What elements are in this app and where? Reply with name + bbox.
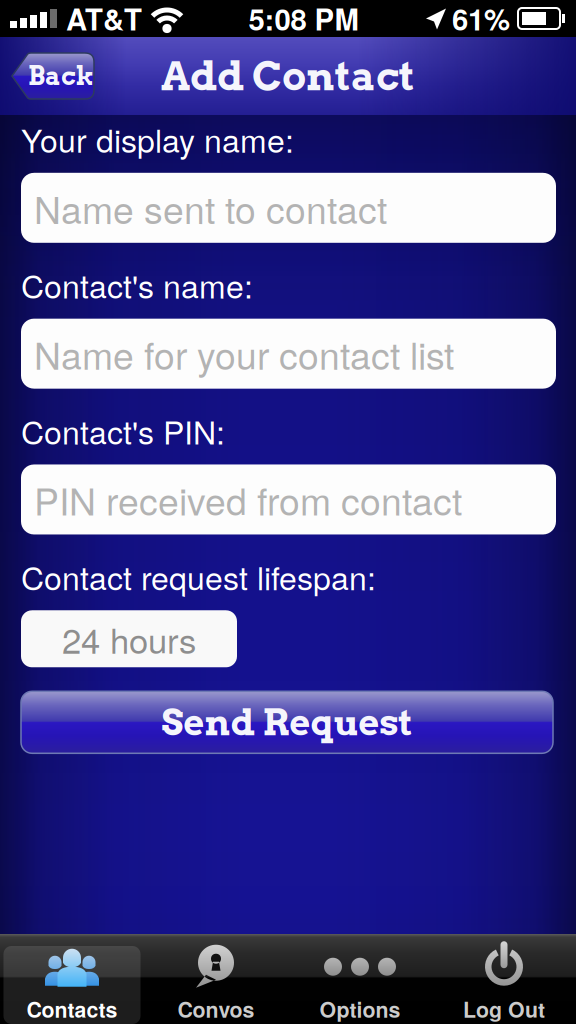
button[interactable]: Back bbox=[12, 53, 94, 99]
staticText: Options bbox=[319, 994, 400, 1024]
button[interactable]: Log Out bbox=[432, 934, 576, 1024]
staticText: Contacts bbox=[26, 994, 117, 1024]
staticText: Contact request lifespan: bbox=[21, 553, 376, 599]
staticText: Contact's name: bbox=[21, 262, 253, 308]
staticText: Your display name: bbox=[21, 116, 294, 162]
button[interactable]: Options bbox=[288, 934, 432, 1024]
staticText: Name for your contact list bbox=[34, 327, 454, 380]
staticText: Convos bbox=[177, 994, 254, 1024]
button[interactable]: Contacts bbox=[0, 934, 144, 1024]
staticText: 5:08 PM bbox=[248, 0, 358, 39]
button[interactable]: Send Request bbox=[21, 691, 553, 753]
staticText: Send Request bbox=[161, 701, 412, 744]
staticText: 24 hours bbox=[62, 614, 196, 664]
button[interactable]: 24 hours bbox=[21, 610, 237, 667]
staticText: PIN received from contact bbox=[34, 473, 462, 526]
staticText: Add Contact bbox=[161, 52, 415, 100]
staticText: 61% bbox=[452, 0, 510, 39]
staticText: Contact's PIN: bbox=[21, 408, 225, 453]
staticText: AT&T bbox=[66, 0, 142, 39]
staticText: Name sent to contact bbox=[34, 181, 387, 235]
button[interactable]: Name for your contact list bbox=[21, 319, 556, 389]
staticText: Log Out bbox=[463, 994, 545, 1024]
button[interactable]: Convos bbox=[144, 934, 288, 1024]
button[interactable]: PIN received from contact bbox=[21, 464, 556, 534]
button[interactable]: Name sent to contact bbox=[21, 173, 556, 243]
staticText: Back bbox=[28, 61, 94, 91]
